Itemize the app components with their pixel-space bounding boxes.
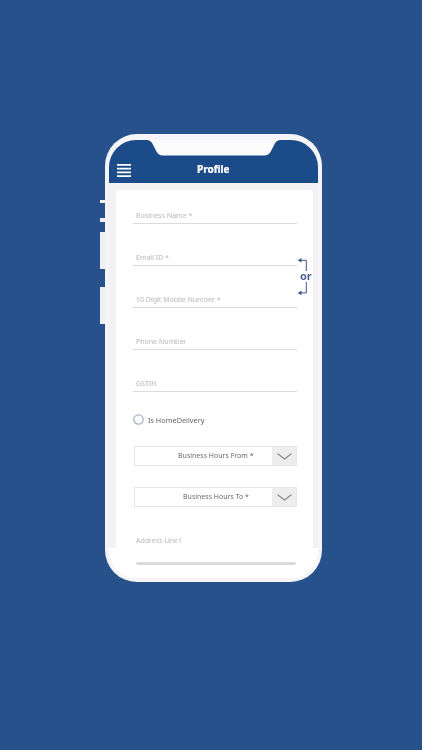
staticText: Business Name * bbox=[136, 211, 193, 221]
staticText: GSTIN bbox=[136, 379, 157, 389]
staticText: Email ID * bbox=[136, 253, 169, 263]
button[interactable]: Is HomeDelivery bbox=[133, 412, 205, 427]
staticText: Profile bbox=[197, 162, 230, 176]
button[interactable]: Business Hours To * bbox=[134, 487, 297, 507]
staticText: 10 Digit Mobile Number * bbox=[136, 295, 221, 305]
staticText: Business Hours From * bbox=[178, 451, 254, 461]
button[interactable]: Business Hours From * bbox=[134, 446, 297, 466]
button[interactable]: Menu bbox=[113, 160, 135, 180]
staticText: Is HomeDelivery bbox=[148, 415, 205, 425]
staticText: Business Hours To * bbox=[183, 492, 249, 502]
staticText: or bbox=[300, 268, 312, 283]
staticText: Phone Number bbox=[136, 337, 187, 347]
staticText: Address Line1 bbox=[136, 536, 183, 546]
